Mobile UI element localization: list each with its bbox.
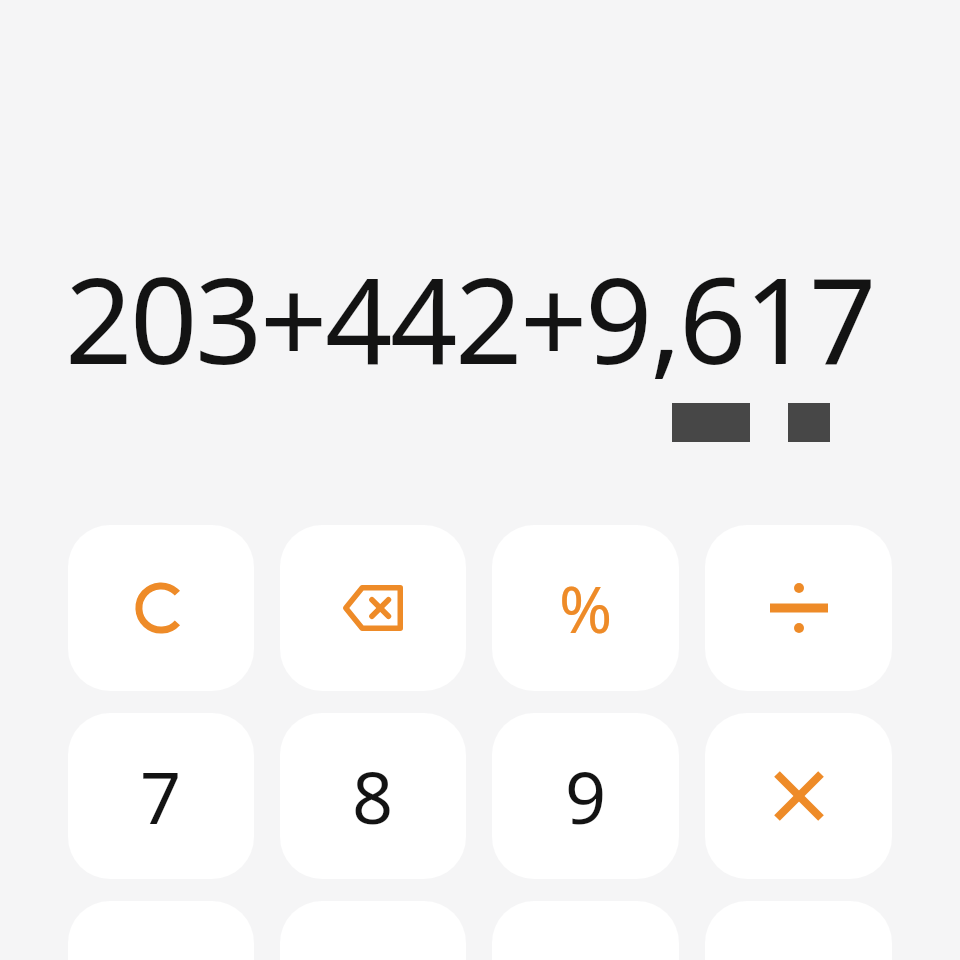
button[interactable]: 7 — [68, 713, 254, 879]
button[interactable]: 9 — [492, 713, 679, 879]
button[interactable]: Backspace — [280, 525, 466, 691]
button[interactable]: 8 — [280, 713, 466, 879]
staticText: 7 — [140, 747, 182, 845]
button[interactable]: % — [492, 525, 679, 691]
button[interactable]: Multiply — [705, 713, 892, 879]
button[interactable]: Clear — [68, 525, 254, 691]
button[interactable]: Divide — [705, 525, 892, 691]
staticText: 8 — [352, 747, 394, 845]
staticText: % — [559, 565, 613, 652]
staticText: 203+442+9,617 — [0, 238, 874, 399]
staticText: 9 — [565, 747, 607, 845]
